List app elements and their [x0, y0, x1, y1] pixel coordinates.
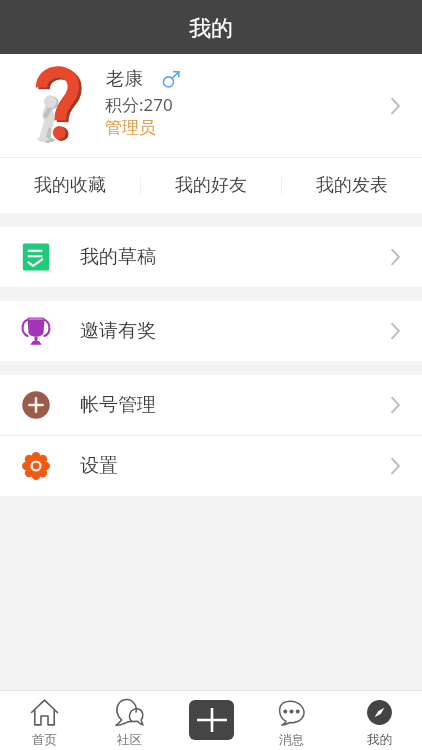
staticText: 邀请有奖	[80, 319, 156, 343]
button[interactable]: 邀请有奖	[0, 301, 422, 361]
button[interactable]: 我的草稿	[0, 227, 422, 287]
staticText: 帐号管理	[80, 393, 156, 417]
staticText: 我的	[189, 15, 233, 43]
staticText: 老康	[106, 67, 143, 90]
staticText: 社区	[117, 732, 142, 746]
button[interactable]: 帐号管理	[0, 375, 422, 435]
button[interactable]: 首页	[14, 699, 74, 746]
button[interactable]: New post	[189, 700, 234, 740]
button[interactable]: 消息	[261, 699, 321, 746]
button[interactable]: 设置	[0, 436, 422, 496]
staticText: 我的发表	[316, 174, 388, 197]
staticText: 管理员	[105, 117, 156, 138]
staticText: 我的收藏	[34, 174, 106, 197]
button[interactable]: 我的	[349, 699, 409, 746]
staticText: 设置	[80, 454, 118, 478]
staticText: 首页	[32, 732, 57, 746]
button[interactable]: 社区	[99, 699, 159, 746]
button[interactable]: 我的收藏	[0, 158, 140, 213]
staticText: 消息	[279, 732, 304, 746]
button[interactable]: 我的好友	[141, 158, 281, 213]
button[interactable]: 我的发表	[282, 158, 422, 213]
button[interactable]: 老康	[0, 54, 422, 157]
staticText: 我的	[367, 732, 392, 746]
staticText: 我的好友	[175, 174, 247, 197]
staticText: 积分:270	[105, 93, 173, 116]
staticText: 我的草稿	[80, 245, 156, 269]
